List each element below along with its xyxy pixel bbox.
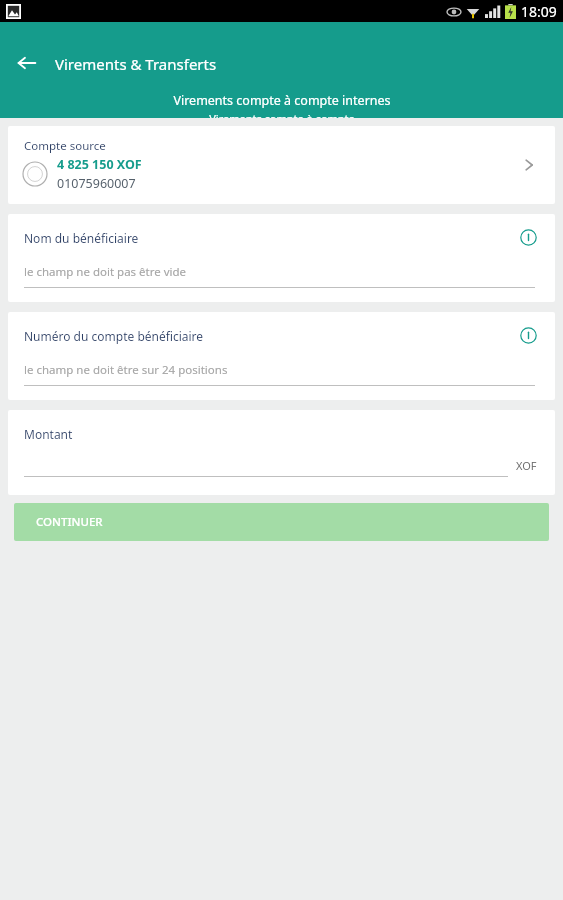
- button[interactable]: Information: [513, 320, 543, 350]
- staticText: Numéro du compte bénéficiaire: [24, 328, 204, 344]
- staticText: Nom du bénéficiaire: [24, 230, 139, 246]
- button[interactable]: CONTINUER: [14, 503, 549, 541]
- staticText: Montant: [24, 426, 73, 442]
- button[interactable]: Compte source: [8, 126, 555, 204]
- button[interactable]: Information: [513, 222, 543, 252]
- staticText: 18:09: [521, 2, 557, 21]
- button[interactable]: Back: [8, 44, 46, 82]
- staticText: Virements & Transferts: [55, 54, 217, 74]
- staticText: XOF: [516, 458, 537, 473]
- staticText: le champ ne doit pas être vide: [24, 264, 187, 280]
- staticText: 01075960007: [57, 175, 136, 192]
- staticText: Virements compte à compte: [209, 111, 355, 118]
- staticText: le champ ne doit être sur 24 positions: [24, 362, 228, 378]
- staticText: Virements compte à compte internes: [173, 92, 391, 109]
- staticText: CONTINUER: [36, 514, 103, 530]
- staticText: Compte source: [24, 138, 106, 154]
- staticText: 4 825 150 XOF: [57, 156, 142, 173]
